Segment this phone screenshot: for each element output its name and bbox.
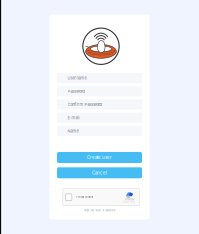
staticText: Cancel: [92, 170, 107, 175]
staticText: Password: [68, 89, 85, 94]
staticText: Name: [68, 128, 79, 133]
staticText: I'm not a robot: [76, 196, 93, 199]
button[interactable]: Password: [57, 86, 142, 96]
staticText: Confirm Password: [68, 102, 102, 107]
button[interactable]: Confirm Password: [57, 99, 142, 110]
staticText: E-mail: [68, 115, 80, 120]
staticText: Create user: [87, 155, 112, 160]
staticText: Username: [68, 76, 87, 80]
button[interactable]: I'm not a robot: [63, 189, 140, 206]
button[interactable]: Create user: [57, 152, 142, 163]
staticText: reCAPTCHA: [125, 198, 134, 201]
staticText: Privacy - Terms: [123, 201, 135, 203]
button[interactable]: Cancel: [57, 167, 142, 178]
button[interactable]: Username: [57, 73, 142, 83]
button[interactable]: Forgot your email or password?: [83, 209, 115, 212]
button[interactable]: E-mail: [57, 113, 142, 123]
button[interactable]: Name: [57, 126, 142, 136]
staticText: Forgot your email or password?: [83, 209, 115, 212]
